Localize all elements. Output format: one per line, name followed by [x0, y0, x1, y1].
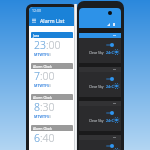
button[interactable]: Alarm enabled [105, 110, 114, 115]
staticText: S [49, 83, 51, 88]
staticText: 8 [34, 100, 40, 114]
button[interactable]: Alarm Clock [31, 63, 73, 90]
staticText: Alarm Clock [33, 126, 52, 131]
staticText: :30 [40, 100, 55, 114]
staticText: :00 [40, 69, 55, 83]
staticText: 7 [34, 69, 40, 83]
staticText: :00 [46, 38, 61, 52]
staticText: :40 [40, 131, 55, 145]
staticText: MTWTFS [34, 114, 49, 119]
button[interactable]: Alarm Clock [31, 125, 73, 148]
staticText: Jara [33, 33, 40, 38]
staticText: S [49, 114, 51, 119]
staticText: MTWTFS [34, 83, 49, 88]
button[interactable]: Alarm enabled [79, 67, 121, 97]
staticText: 24ºC [106, 50, 114, 55]
staticText: 6 [34, 131, 40, 145]
staticText: Alarm Clock [33, 64, 52, 69]
staticText: 24ºC [106, 118, 114, 123]
staticText: Clear Sky [89, 50, 104, 55]
button[interactable]: Alarm enabled [105, 143, 114, 148]
staticText: 23 [34, 38, 46, 52]
button[interactable]: Alarm enabled [79, 33, 121, 63]
staticText: 12:00 [32, 8, 41, 13]
staticText: MTWTFS [34, 52, 49, 57]
button[interactable]: Alarm enabled [105, 76, 114, 81]
other: Open navigation menu [32, 18, 36, 22]
button[interactable]: Alarm enabled [105, 42, 114, 47]
staticText: 24ºC [106, 84, 114, 89]
button[interactable]: Open navigation menu [29, 14, 75, 26]
staticText: Clear Sky [89, 84, 104, 89]
button[interactable]: Alarm enabled [79, 101, 121, 131]
staticText: S [49, 52, 51, 57]
staticText: Alarm List [40, 17, 65, 24]
staticText: Clear Sky [89, 118, 104, 123]
staticText: Alarm Clock [33, 95, 52, 100]
button[interactable]: Alarm enabled [79, 135, 121, 150]
button[interactable]: Alarm Clock [31, 94, 73, 121]
button[interactable]: Jara [31, 32, 73, 59]
